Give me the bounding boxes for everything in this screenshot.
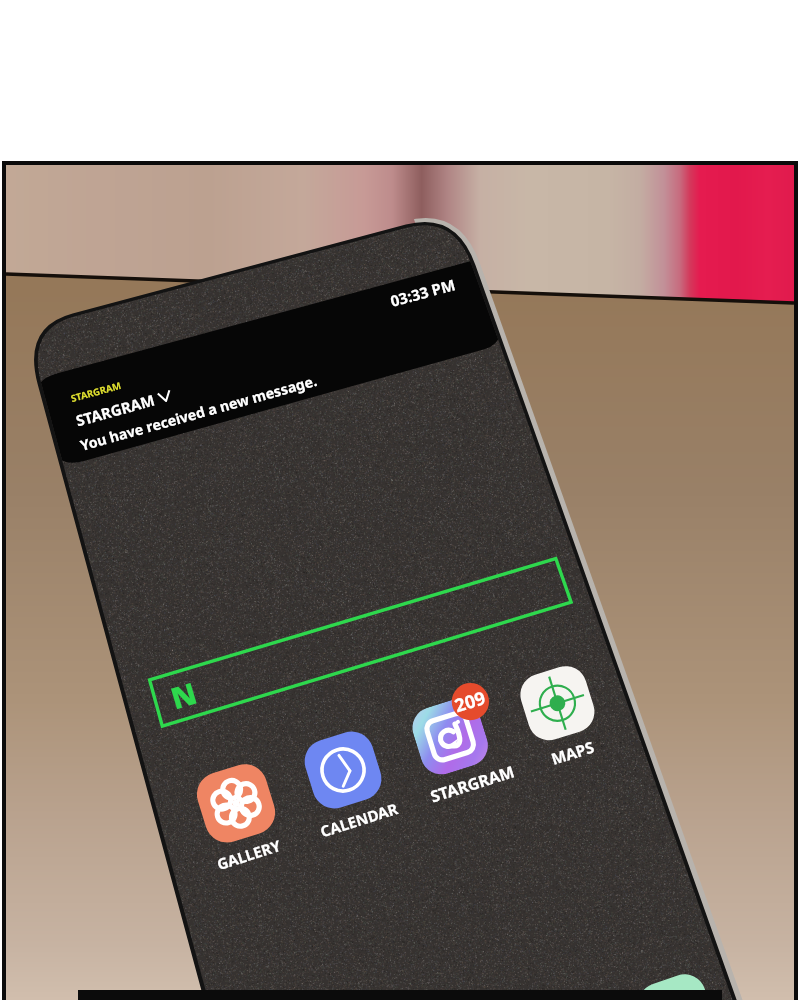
- button[interactable]: Comic panel: phone on a desk showing a S…: [0, 0, 800, 1000]
